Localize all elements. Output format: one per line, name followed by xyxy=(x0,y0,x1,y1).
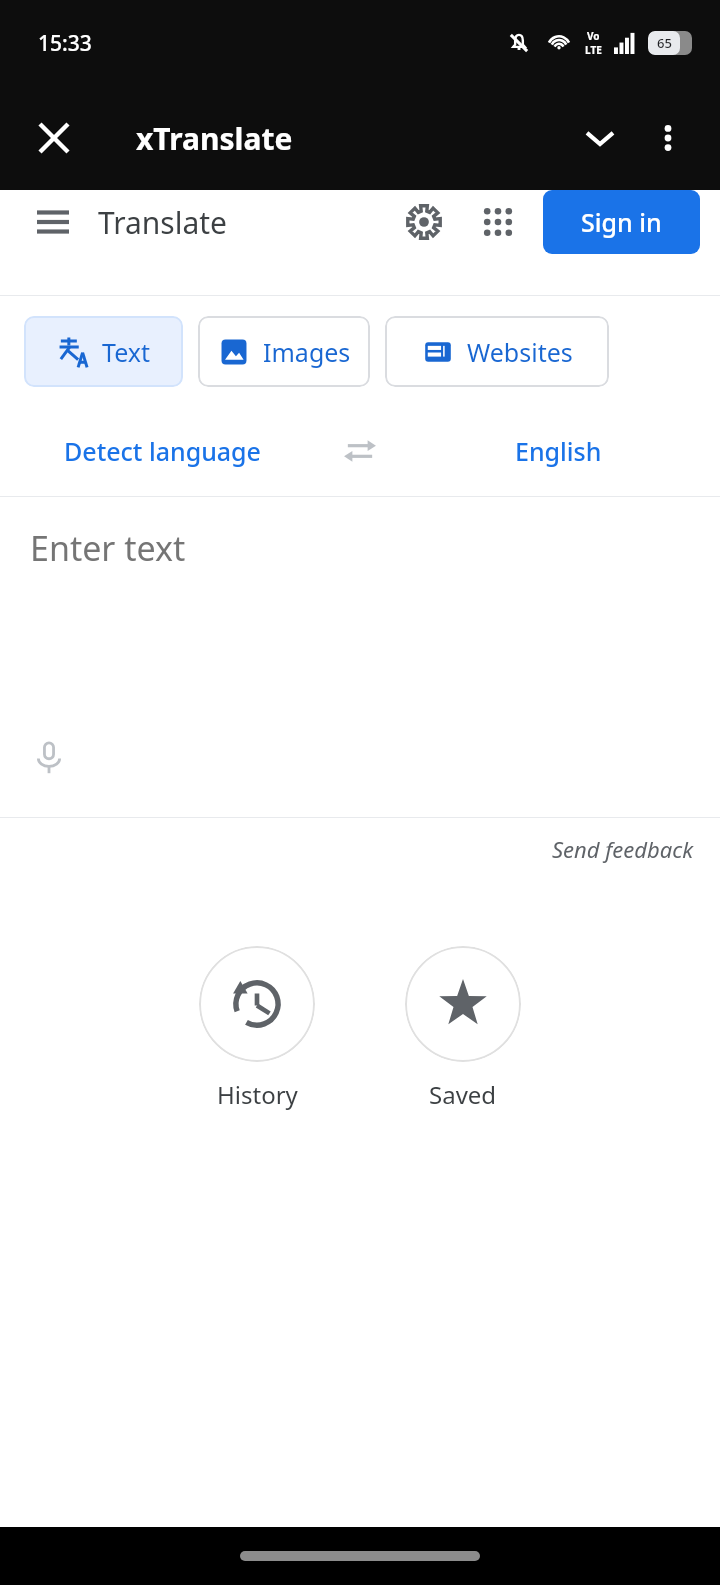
button[interactable]: English xyxy=(396,406,720,496)
staticText: Text xyxy=(102,335,151,369)
button[interactable]: Websites xyxy=(385,316,609,387)
staticText: Websites xyxy=(467,335,573,369)
button[interactable]: Images xyxy=(198,316,370,387)
staticText: Detect language xyxy=(64,434,261,468)
button[interactable]: Saved xyxy=(399,940,527,1117)
staticText: Translate xyxy=(98,202,228,243)
button[interactable]: Expand xyxy=(566,104,634,172)
button[interactable]: Swap languages xyxy=(324,415,396,487)
button[interactable]: Text xyxy=(24,316,183,387)
staticText: English xyxy=(515,434,602,468)
staticText: History xyxy=(217,1078,298,1111)
staticText: Sign in xyxy=(581,205,662,239)
button[interactable]: Voice input xyxy=(18,727,80,789)
staticText: LTE xyxy=(585,43,602,57)
button[interactable]: Detect language xyxy=(0,406,324,496)
staticText: 15:33 xyxy=(38,29,92,58)
button[interactable]: Send feedback xyxy=(552,834,694,864)
staticText: xTranslate xyxy=(136,118,293,159)
button[interactable]: History xyxy=(193,940,321,1117)
button[interactable]: Google apps xyxy=(467,191,529,253)
staticText: Images xyxy=(263,335,351,369)
staticText: Enter text xyxy=(30,525,186,571)
staticText: Saved xyxy=(429,1078,497,1111)
button[interactable]: Settings xyxy=(393,191,455,253)
button[interactable]: More options xyxy=(634,104,702,172)
staticText: Send feedback xyxy=(552,834,694,864)
button[interactable]: Sign in xyxy=(543,190,700,254)
button[interactable]: Menu xyxy=(22,191,84,253)
button[interactable]: Close xyxy=(20,104,88,172)
staticText: 65 xyxy=(657,34,672,52)
staticText: Vo xyxy=(587,29,600,43)
